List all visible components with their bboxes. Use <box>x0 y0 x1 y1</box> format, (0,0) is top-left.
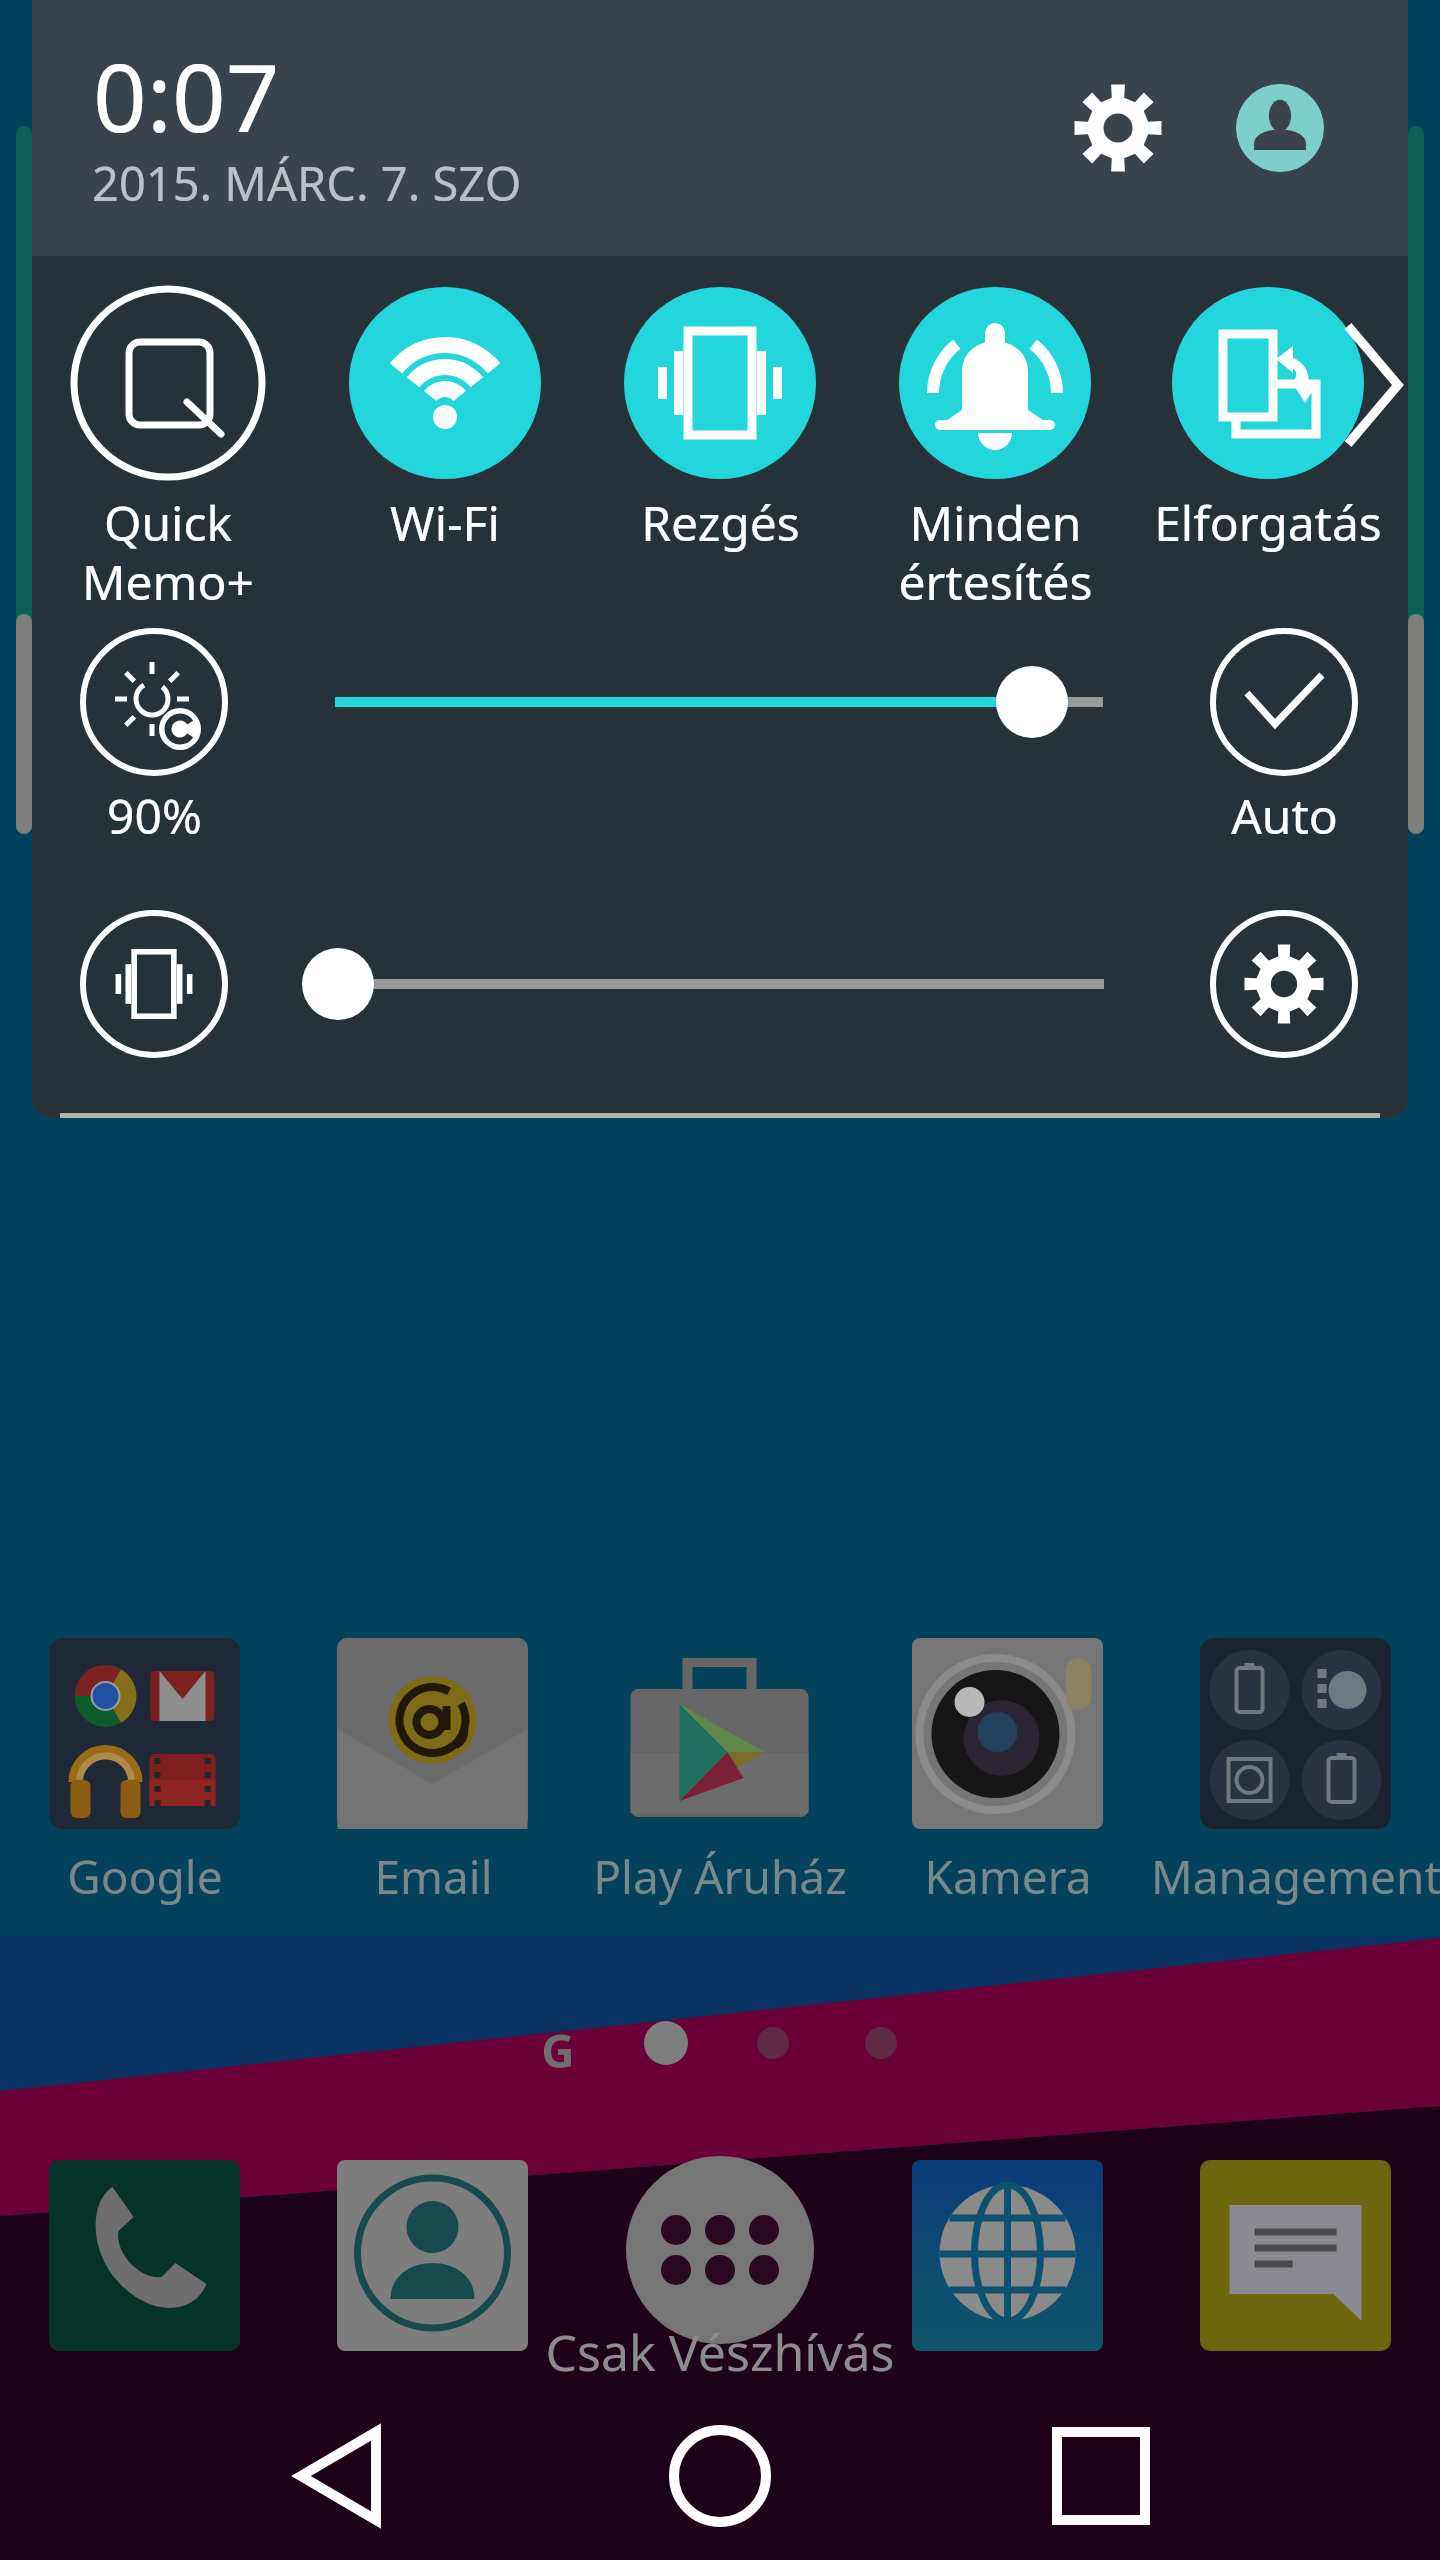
staticText: Quick Memo+ <box>82 490 254 614</box>
button[interactable]: Rezgés <box>570 490 870 620</box>
staticText: 0:07 <box>93 32 280 160</box>
button[interactable]: Auto <box>1134 783 1408 853</box>
button[interactable]: Contacts <box>337 2156 529 2348</box>
staticText: Play Áruház <box>593 1845 847 1908</box>
button[interactable]: 90% <box>32 783 304 853</box>
button[interactable]: Google <box>0 1634 295 1906</box>
button[interactable]: G <box>500 2019 616 2079</box>
button[interactable]: Apps <box>624 2156 816 2348</box>
button[interactable]: Kamera <box>858 1634 1158 1906</box>
staticText: Rezgés <box>641 490 800 555</box>
staticText: 2015. MÁRC. 7. SZO <box>92 151 522 215</box>
staticText: G <box>541 2019 575 2079</box>
staticText: Auto <box>1231 783 1338 848</box>
button[interactable]: Play Áruház <box>570 1634 870 1906</box>
button[interactable]: Messaging <box>1200 2156 1392 2348</box>
staticText: Csak Vészhívás <box>545 2318 895 2386</box>
staticText: Wi-Fi <box>390 490 500 555</box>
button[interactable]: Home <box>630 2386 810 2560</box>
button[interactable]: Back <box>248 2386 428 2560</box>
staticText: Management <box>1151 1845 1440 1908</box>
button[interactable]: Email <box>283 1634 583 1906</box>
button[interactable]: User profile <box>1224 72 1336 184</box>
button[interactable]: Recents <box>1011 2386 1191 2560</box>
staticText: Email <box>374 1845 493 1908</box>
staticText: Kamera <box>924 1845 1092 1908</box>
button[interactable]: Elforgatás <box>1118 490 1408 620</box>
button[interactable]: Settings <box>1062 72 1174 184</box>
button[interactable]: Browser <box>912 2156 1104 2348</box>
button[interactable]: Quick Memo+ <box>32 490 318 620</box>
button[interactable]: Wi-Fi <box>295 490 595 620</box>
staticText: 90% <box>107 783 202 848</box>
button[interactable]: Management <box>1146 1634 1440 1906</box>
staticText: Google <box>67 1845 223 1908</box>
button[interactable]: Phone <box>49 2156 241 2348</box>
staticText: Minden értesítés <box>898 490 1093 614</box>
button[interactable]: Minden értesítés <box>845 490 1145 620</box>
staticText: Elforgatás <box>1154 490 1382 555</box>
